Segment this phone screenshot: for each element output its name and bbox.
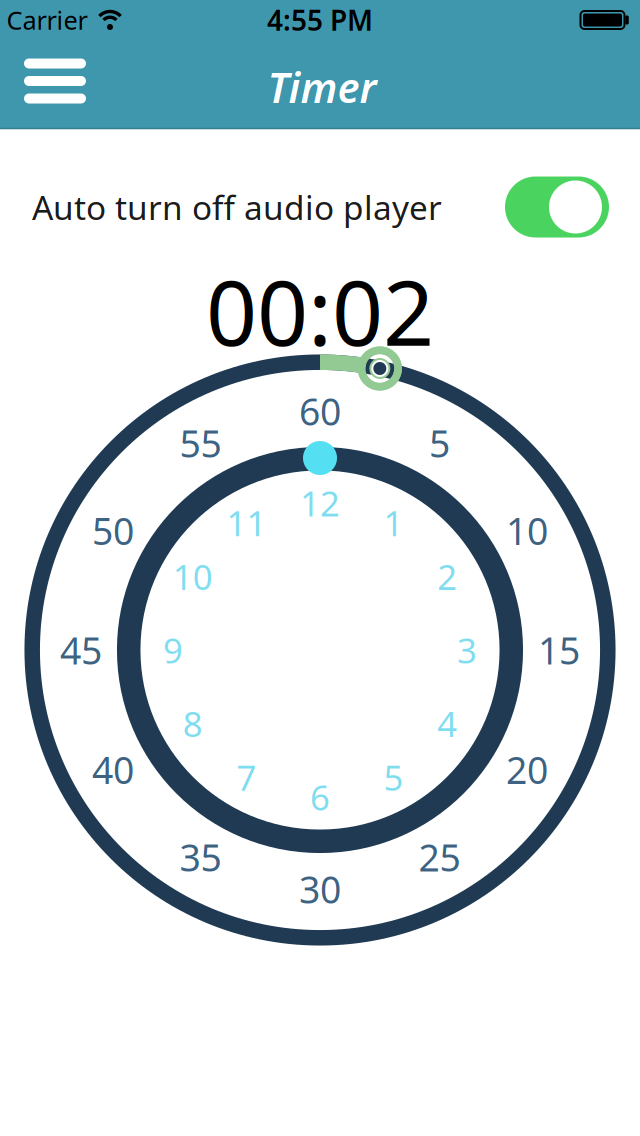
staticText: 7	[236, 754, 256, 800]
staticText: 5	[383, 754, 403, 800]
staticText: 15	[538, 625, 580, 675]
staticText: 20	[506, 745, 548, 794]
staticText: 9	[163, 627, 183, 673]
staticText: Carrier	[6, 3, 87, 37]
staticText: 8	[183, 700, 203, 746]
staticText: 00:02	[206, 252, 434, 370]
staticText: Timer	[267, 60, 376, 114]
staticText: 1	[383, 500, 403, 546]
staticText: 55	[179, 418, 221, 468]
staticText: 2	[437, 553, 457, 599]
staticText: 10	[173, 553, 213, 599]
staticText: 10	[506, 506, 548, 555]
staticText: 35	[179, 832, 221, 882]
staticText: 6	[310, 774, 330, 820]
staticText: 50	[92, 506, 134, 555]
staticText: 25	[418, 832, 460, 882]
staticText: 3	[457, 627, 477, 673]
staticText: Auto turn off audio player	[32, 185, 442, 229]
staticText: 4:55 PM	[267, 1, 373, 39]
button[interactable]: Menu	[12, 46, 98, 116]
staticText: 5	[429, 418, 450, 468]
staticText: 30	[299, 864, 341, 914]
staticText: 11	[226, 500, 266, 546]
staticText: 45	[60, 625, 102, 675]
button[interactable]: Auto turn off audio player	[505, 176, 609, 237]
staticText: 12	[300, 480, 340, 526]
staticText: 60	[299, 386, 341, 436]
staticText: 4	[437, 700, 457, 746]
staticText: 40	[92, 745, 134, 794]
